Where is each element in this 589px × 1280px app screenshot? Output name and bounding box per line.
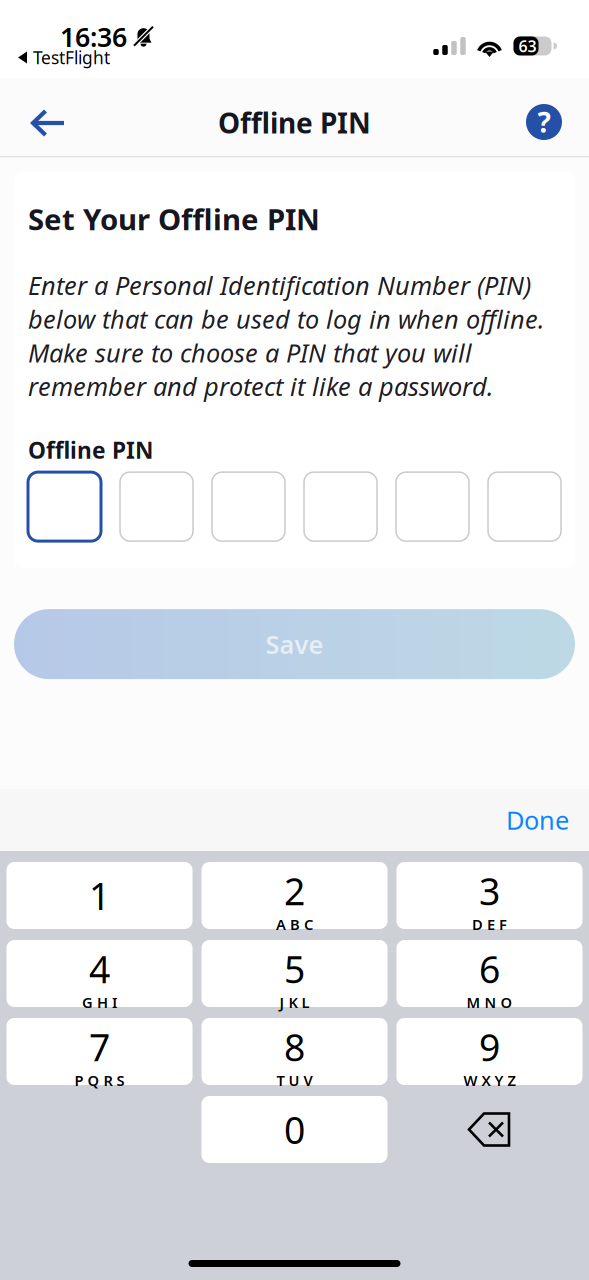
button[interactable]: 3: [396, 862, 582, 929]
button[interactable]: Help: [510, 77, 575, 157]
button[interactable]: PIN digit: [396, 472, 469, 541]
button[interactable]: 1: [6, 862, 192, 929]
staticText: P Q R S: [74, 1070, 124, 1090]
staticText: 9: [479, 1022, 500, 1072]
staticText: J K L: [279, 992, 309, 1012]
button[interactable]: 8: [201, 1018, 387, 1085]
button[interactable]: PIN digit: [212, 472, 285, 541]
staticText: 2: [284, 866, 305, 916]
staticText: 16:36: [60, 19, 127, 54]
staticText: 7: [89, 1022, 110, 1072]
staticText: ?: [537, 103, 550, 141]
staticText: 5: [284, 944, 305, 994]
staticText: Offline PIN: [218, 104, 371, 141]
staticText: 6: [479, 944, 500, 994]
button[interactable]: PIN digit: [304, 472, 377, 541]
button[interactable]: Delete: [396, 1096, 582, 1163]
button[interactable]: 5: [201, 940, 387, 1007]
button[interactable]: 0: [201, 1096, 387, 1163]
staticText: TestFlight: [33, 46, 110, 69]
button[interactable]: PIN digit: [488, 472, 561, 541]
button[interactable]: Save: [0, 609, 589, 679]
staticText: Set Your Offline PIN: [28, 199, 320, 238]
staticText: Done: [506, 803, 569, 837]
staticText: Save: [265, 627, 323, 661]
staticText: 3: [479, 866, 500, 916]
button[interactable]: 6: [396, 940, 582, 1007]
staticText: Enter a Personal Identification Number (…: [28, 268, 544, 403]
staticText: 8: [284, 1022, 305, 1072]
button[interactable]: PIN digit: [28, 472, 101, 541]
button[interactable]: Done: [486, 791, 589, 849]
staticText: G H I: [82, 992, 117, 1012]
staticText: Offline PIN: [28, 435, 153, 465]
staticText: M N O: [466, 992, 512, 1012]
staticText: 63: [518, 35, 536, 57]
staticText: W X Y Z: [463, 1070, 515, 1090]
button[interactable]: PIN digit: [120, 472, 193, 541]
staticText: D E F: [472, 914, 507, 934]
staticText: 4: [89, 944, 110, 994]
button[interactable]: 9: [396, 1018, 582, 1085]
button[interactable]: 2: [201, 862, 387, 929]
staticText: 1: [89, 871, 110, 920]
button[interactable]: 7: [6, 1018, 192, 1085]
staticText: T U V: [276, 1070, 312, 1090]
button[interactable]: 4: [6, 940, 192, 1007]
staticText: A B C: [276, 914, 313, 934]
button[interactable]: Back: [14, 81, 82, 152]
staticText: 0: [284, 1105, 305, 1154]
